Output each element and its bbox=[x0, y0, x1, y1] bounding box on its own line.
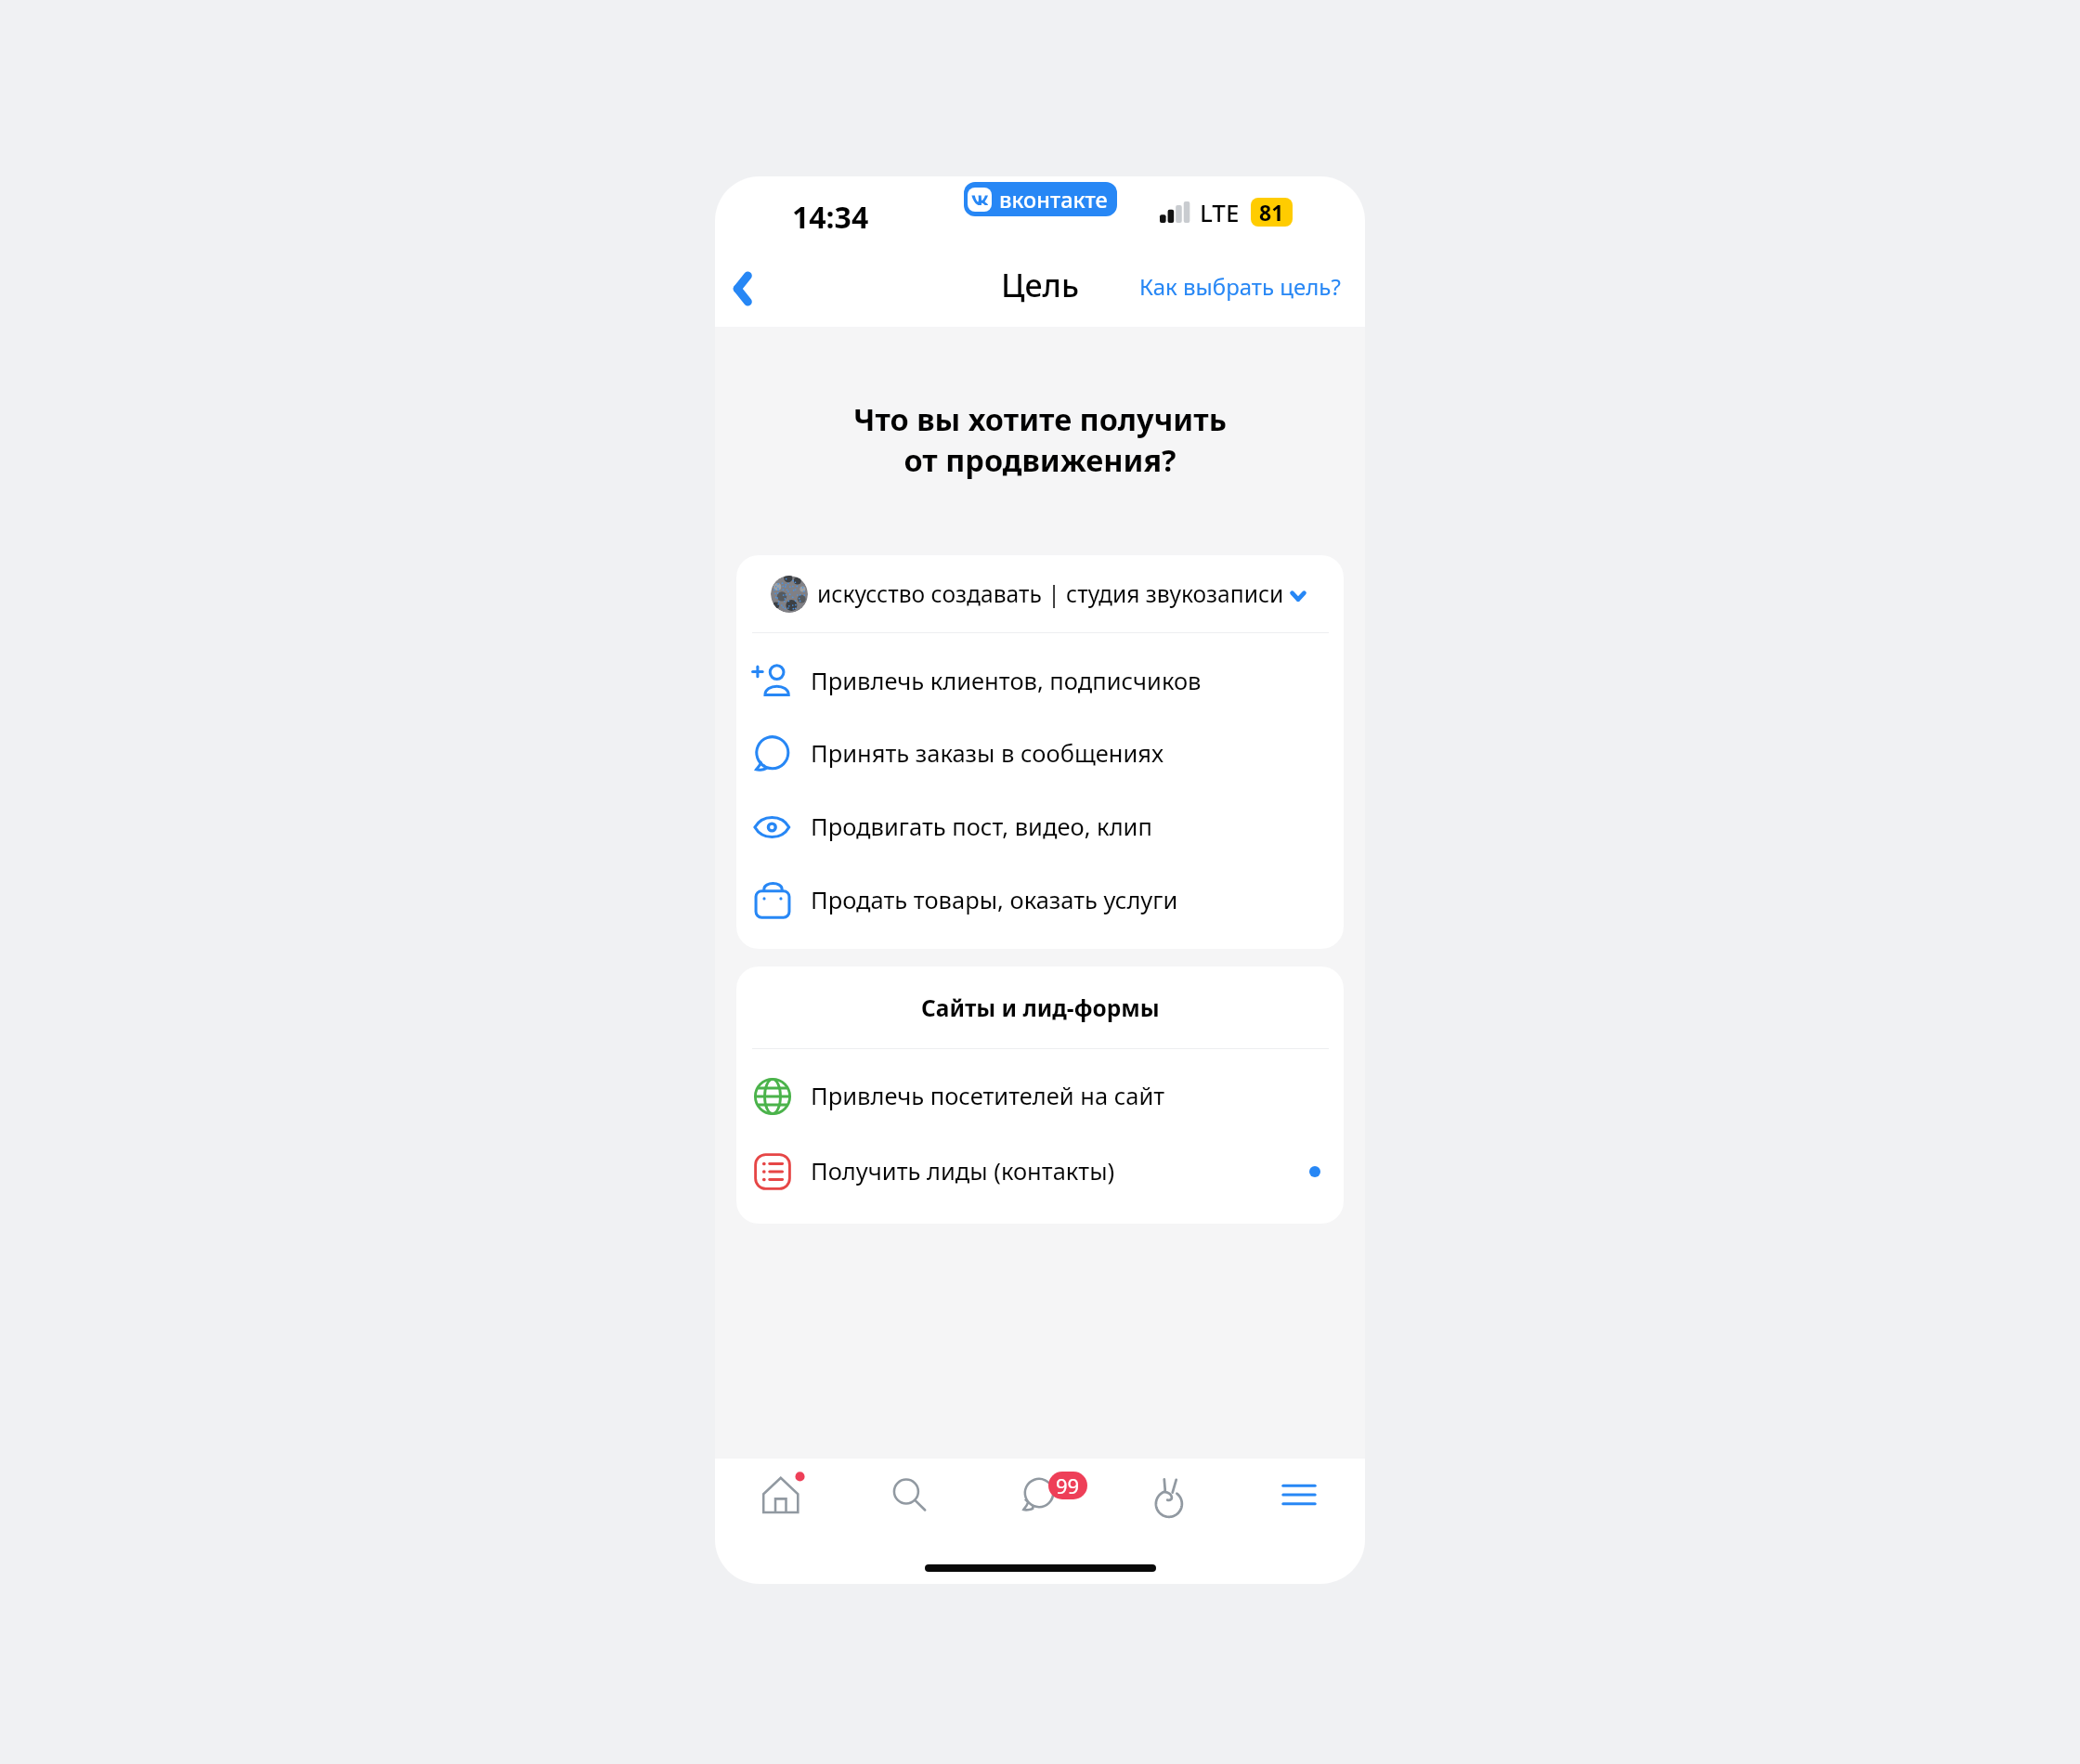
button[interactable]: Клипы bbox=[1124, 1459, 1208, 1531]
button[interactable]: Главная bbox=[739, 1459, 823, 1531]
staticText: 99 bbox=[1056, 1472, 1080, 1499]
button[interactable]: Меню bbox=[1257, 1459, 1341, 1531]
staticText: Сайты и лид-формы bbox=[921, 992, 1160, 1023]
staticText: 81 bbox=[1259, 198, 1284, 227]
button[interactable]: Привлечь клиентов, подписчиков bbox=[736, 644, 1344, 718]
staticText: Получить лиды (контакты) bbox=[811, 1155, 1115, 1187]
button[interactable]: Как выбрать цель? bbox=[1132, 260, 1348, 313]
staticText: Цель bbox=[1001, 264, 1079, 306]
button[interactable]: искусство создавать | студия звукозаписи bbox=[736, 555, 1344, 632]
staticText: искусство создавать | студия звукозаписи bbox=[817, 578, 1284, 610]
staticText: Продвигать пост, видео, клип bbox=[811, 811, 1152, 843]
button[interactable]: Поиск bbox=[867, 1459, 951, 1531]
staticText: Продать товары, оказать услуги bbox=[811, 884, 1178, 916]
button[interactable]: Продать товары, оказать услуги bbox=[736, 863, 1344, 937]
staticText: Как выбрать цель? bbox=[1139, 271, 1341, 302]
staticText: вконтакте bbox=[999, 185, 1108, 214]
button[interactable]: Продвигать пост, видео, клип bbox=[736, 790, 1344, 863]
button[interactable]: Принять заказы в сообщениях bbox=[736, 717, 1344, 790]
staticText: Принять заказы в сообщениях bbox=[811, 737, 1164, 770]
staticText: Что вы хотите получить от продвижения? bbox=[853, 398, 1227, 480]
staticText: Привлечь клиентов, подписчиков bbox=[811, 665, 1202, 697]
button[interactable]: Сообщения bbox=[997, 1459, 1081, 1531]
button[interactable]: Получить лиды (контакты) bbox=[736, 1135, 1344, 1208]
button[interactable]: Привлечь посетителей на сайт bbox=[736, 1059, 1344, 1133]
staticText: 14:34 bbox=[792, 197, 869, 238]
staticText: Привлечь посетителей на сайт bbox=[811, 1080, 1165, 1112]
staticText: LTE bbox=[1200, 196, 1240, 228]
button[interactable]: Назад bbox=[719, 260, 776, 318]
